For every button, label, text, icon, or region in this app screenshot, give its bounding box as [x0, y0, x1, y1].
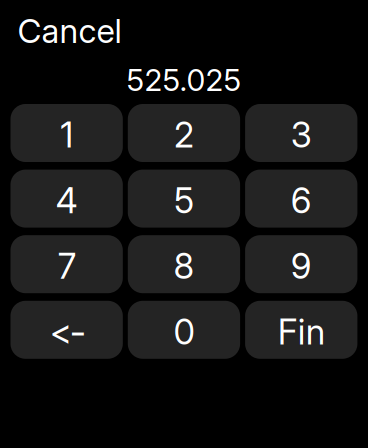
- button[interactable]: Fin: [245, 301, 357, 359]
- button[interactable]: 4: [10, 170, 123, 228]
- staticText: <: [50, 311, 72, 353]
- button[interactable]: 5: [128, 170, 240, 228]
- button[interactable]: Cancel: [0, 16, 135, 46]
- staticText: Fin: [278, 311, 325, 353]
- staticText: 7: [58, 245, 76, 287]
- staticText: Cancel: [17, 11, 121, 51]
- button[interactable]: 2: [128, 104, 240, 162]
- staticText: 5: [174, 180, 194, 221]
- staticText: 3: [291, 114, 312, 156]
- staticText: 6: [291, 180, 312, 221]
- button[interactable]: 6: [245, 170, 357, 228]
- button[interactable]: Delete: [10, 301, 123, 359]
- staticText: 0: [173, 311, 194, 353]
- staticText: 1: [60, 114, 73, 156]
- staticText: 2: [174, 114, 194, 156]
- staticText: 8: [173, 245, 194, 287]
- staticText: 9: [291, 245, 312, 287]
- button[interactable]: 9: [245, 235, 357, 293]
- button[interactable]: 0: [128, 301, 240, 359]
- button[interactable]: 1: [10, 104, 123, 162]
- button[interactable]: 3: [245, 104, 357, 162]
- button[interactable]: 7: [10, 235, 123, 293]
- staticText: -: [70, 309, 86, 354]
- staticText: 4: [56, 180, 78, 221]
- staticText: 525.025: [126, 62, 241, 98]
- button[interactable]: 8: [128, 235, 240, 293]
